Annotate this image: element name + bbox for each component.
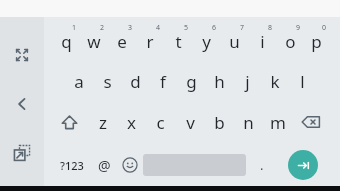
staticText: g	[186, 70, 197, 93]
button[interactable]: s	[93, 62, 121, 100]
button[interactable]: m	[265, 103, 290, 141]
staticText: t	[175, 30, 182, 53]
staticText: 3	[128, 23, 133, 33]
button[interactable]: t	[164, 22, 192, 60]
staticText: a	[74, 70, 84, 93]
button[interactable]: k	[261, 62, 289, 100]
button[interactable]: p	[304, 22, 328, 60]
staticText: d	[130, 70, 141, 93]
staticText: h	[214, 70, 225, 93]
staticText: n	[243, 111, 254, 134]
staticText: .	[260, 156, 264, 174]
button[interactable]: b	[207, 103, 232, 141]
staticText: @	[98, 156, 111, 175]
staticText: q	[61, 30, 72, 53]
button[interactable]: h	[205, 62, 233, 100]
button[interactable]: x	[119, 103, 144, 141]
staticText: z	[99, 111, 107, 134]
staticText: u	[229, 30, 240, 53]
staticText: 8	[268, 23, 273, 33]
button[interactable]: g	[177, 62, 205, 100]
button[interactable]: d	[121, 62, 149, 100]
staticText: 1	[72, 23, 77, 33]
staticText: o	[285, 30, 296, 53]
button[interactable]: u	[220, 22, 248, 60]
button[interactable]: .	[246, 145, 278, 185]
staticText: l	[300, 70, 305, 93]
button[interactable]: j	[233, 62, 261, 100]
button[interactable]: l	[289, 62, 315, 100]
button[interactable]: y	[192, 22, 220, 60]
button[interactable]: a	[65, 62, 93, 100]
button[interactable]: Enter	[288, 150, 318, 180]
staticText: 0	[322, 23, 327, 33]
staticText: x	[127, 111, 136, 134]
button[interactable]: i	[248, 22, 276, 60]
staticText: v	[186, 111, 195, 134]
staticText: 7	[240, 23, 245, 33]
button[interactable]: @	[92, 145, 117, 185]
button[interactable]: Shift	[52, 103, 86, 141]
staticText: 5	[184, 23, 189, 33]
button[interactable]: c	[148, 103, 173, 141]
staticText: p	[311, 30, 322, 53]
staticText: i	[260, 30, 265, 53]
staticText: c	[156, 111, 165, 134]
button[interactable]: ?123	[52, 145, 92, 185]
staticText: ?123	[60, 158, 84, 173]
staticText: 4	[156, 23, 161, 33]
button[interactable]: w	[80, 22, 108, 60]
staticText: w	[87, 30, 101, 53]
staticText: f	[160, 70, 166, 93]
staticText: 2	[100, 23, 105, 33]
button[interactable]: e	[108, 22, 136, 60]
staticText: y	[202, 30, 211, 53]
button[interactable]: Floating keyboard	[4, 135, 40, 171]
staticText: b	[214, 111, 225, 134]
button[interactable]: Back	[4, 86, 40, 122]
staticText: r	[146, 30, 154, 53]
staticText: e	[117, 30, 127, 53]
button[interactable]: Backspace	[294, 103, 328, 141]
staticText: s	[103, 70, 112, 93]
button[interactable]: o	[276, 22, 304, 60]
staticText: j	[245, 70, 250, 93]
button[interactable]: r	[136, 22, 164, 60]
button[interactable]: f	[149, 62, 177, 100]
staticText: m	[270, 111, 286, 134]
button[interactable]: Resize keyboard	[4, 37, 40, 73]
button[interactable]: q	[52, 22, 80, 60]
staticText: 6	[212, 23, 217, 33]
staticText: 9	[296, 23, 301, 33]
button[interactable]: Emoji	[117, 145, 143, 185]
staticText: k	[270, 70, 280, 93]
button[interactable]: z	[90, 103, 115, 141]
button[interactable]: v	[178, 103, 203, 141]
button[interactable]: n	[236, 103, 261, 141]
